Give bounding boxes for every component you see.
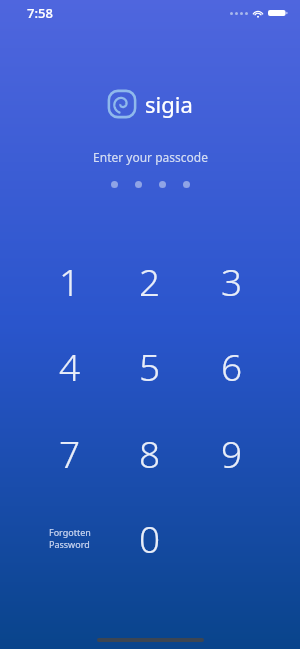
staticText: 7:58 <box>27 4 53 22</box>
button[interactable]: 6 <box>196 335 268 397</box>
button[interactable]: 3 <box>196 250 268 312</box>
staticText: 1 <box>59 256 81 306</box>
button[interactable]: 0 <box>114 507 186 569</box>
staticText: 7 <box>59 428 81 478</box>
button[interactable]: 7 <box>34 422 106 484</box>
button[interactable]: 5 <box>114 335 186 397</box>
button[interactable]: 4 <box>34 335 106 397</box>
staticText: 3 <box>221 256 243 306</box>
staticText: sigia <box>145 89 193 119</box>
staticText: 2 <box>139 256 161 306</box>
staticText: Enter your passcode <box>93 149 208 165</box>
staticText: 4 <box>59 341 81 391</box>
staticText: 6 <box>221 341 243 391</box>
staticText: Forgotten Password <box>49 526 91 551</box>
button[interactable]: Forgotten Password <box>34 507 106 569</box>
staticText: 8 <box>139 428 161 478</box>
staticText: 9 <box>221 428 243 478</box>
button[interactable]: 8 <box>114 422 186 484</box>
button[interactable]: 2 <box>114 250 186 312</box>
staticText: 0 <box>139 513 161 563</box>
button[interactable]: 1 <box>34 250 106 312</box>
button[interactable]: 9 <box>196 422 268 484</box>
staticText: 5 <box>139 341 161 391</box>
